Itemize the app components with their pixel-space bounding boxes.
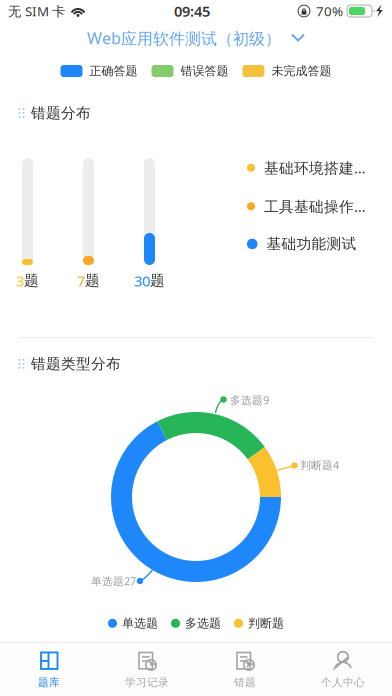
button[interactable]: Web应用软件测试（初级） bbox=[81, 23, 311, 53]
staticText: 单选题27 bbox=[91, 574, 136, 588]
staticText: 无 SIM 卡 bbox=[8, 2, 65, 20]
staticText: 题库 bbox=[38, 676, 60, 689]
button[interactable]: 错题 bbox=[196, 643, 294, 696]
staticText: 7 bbox=[77, 271, 85, 290]
staticText: 基础功能测试 bbox=[266, 235, 356, 253]
staticText: 错题 bbox=[234, 676, 256, 689]
staticText: 09:45 bbox=[174, 1, 210, 21]
staticText: 题 bbox=[85, 272, 100, 290]
staticText: 30 bbox=[134, 271, 150, 290]
staticText: 正确答题 bbox=[89, 64, 137, 78]
button[interactable]: 个人中心 bbox=[294, 643, 392, 696]
staticText: 未完成答题 bbox=[271, 64, 331, 78]
staticText: 判断题 bbox=[248, 616, 284, 631]
button[interactable]: 题库 bbox=[0, 643, 98, 696]
staticText: 判断题4 bbox=[300, 458, 339, 472]
staticText: 错题类型分布 bbox=[31, 355, 121, 373]
staticText: 基础环境搭建… bbox=[264, 158, 366, 177]
staticText: 3 bbox=[16, 271, 24, 290]
staticText: 多选题9 bbox=[230, 393, 269, 407]
staticText: 70% bbox=[316, 2, 343, 20]
staticText: 工具基础操作… bbox=[264, 196, 366, 216]
staticText: 题 bbox=[150, 272, 165, 290]
staticText: 题 bbox=[24, 272, 39, 290]
staticText: 个人中心 bbox=[321, 676, 365, 689]
staticText: 错题分布 bbox=[31, 104, 91, 122]
staticText: 多选题 bbox=[185, 616, 221, 631]
staticText: 学习记录 bbox=[125, 676, 169, 689]
staticText: 单选题 bbox=[122, 616, 158, 631]
button[interactable]: 学习记录 bbox=[98, 643, 196, 696]
staticText: Web应用软件测试（初级） bbox=[87, 27, 281, 49]
staticText: 错误答题 bbox=[180, 64, 228, 78]
